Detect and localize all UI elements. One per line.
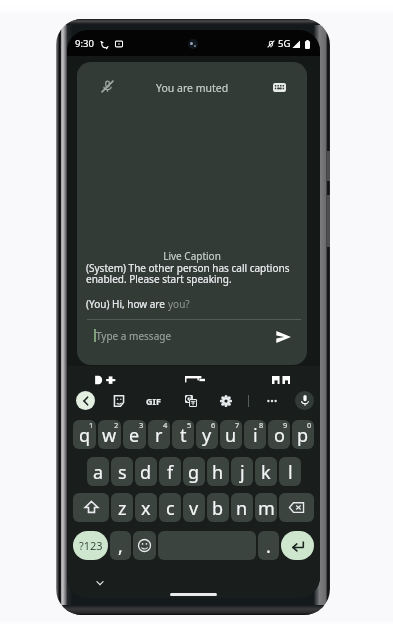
button[interactable]: y [196,420,218,449]
button[interactable]: h [207,457,229,486]
button[interactable]: l [279,457,301,486]
staticText: q [79,423,91,448]
staticText: GIF [146,395,161,407]
staticText: 5 [187,420,192,430]
staticText: (You) Hi, how are [86,297,168,311]
button[interactable]: o [268,420,290,449]
button[interactable]: p [292,420,314,449]
button[interactable]: Shift [73,493,109,522]
button[interactable]: r [148,420,170,449]
staticText: x [141,496,151,521]
button[interactable]: e [123,420,146,449]
staticText: 9 [283,420,288,430]
button[interactable]: a [87,457,109,486]
button[interactable]: v [183,493,205,522]
staticText: k [261,460,271,485]
staticText: 7 [235,420,240,430]
button[interactable]: Settings [216,391,235,410]
staticText: ?123 [79,538,103,553]
button[interactable]: b [207,493,229,522]
staticText: d [140,460,152,485]
staticText: u [225,423,237,448]
staticText: n [236,496,248,521]
button[interactable]: t [172,420,194,449]
staticText: 5G [278,37,291,50]
button[interactable]: Space [158,531,256,560]
staticText: w [102,423,117,448]
button[interactable]: Voice input [295,391,314,410]
button[interactable]: . [258,531,279,560]
staticText: a [93,460,104,485]
button[interactable]: c [159,493,181,522]
staticText: 0 [307,420,312,430]
button[interactable]: , [110,531,131,560]
button[interactable]: q [73,420,96,449]
staticText: 3 [139,420,144,430]
staticText: 2 [114,420,119,430]
staticText: l [288,460,293,485]
button[interactable]: Unmute [96,75,118,97]
staticText: b [212,496,224,521]
staticText: h [212,460,224,485]
staticText: . [266,534,271,559]
staticText: p [297,423,309,448]
button[interactable]: Translate [181,391,200,410]
button[interactable]: Backspace [279,493,314,522]
staticText: , [118,534,123,559]
button[interactable]: k [255,457,277,486]
staticText: you? [168,297,190,311]
staticText: g [188,460,200,485]
staticText: You are muted [156,81,229,95]
staticText: e [129,423,140,448]
button[interactable]: u [220,420,242,449]
button[interactable]: ?123 [73,531,108,560]
button[interactable]: w [98,420,121,449]
button[interactable]: z [111,493,133,522]
button[interactable]: f [159,457,181,486]
staticText: y [202,423,212,448]
button[interactable]: Send [272,326,294,348]
staticText: r [155,423,163,448]
staticText: c [166,496,175,521]
button[interactable]: Enter [281,531,314,560]
staticText: Type a message [96,329,172,343]
staticText: v [189,496,199,521]
button[interactable]: Back [76,391,95,410]
button[interactable]: GIF [144,391,163,410]
button[interactable]: j [231,457,253,486]
staticText: 6 [211,420,216,430]
button[interactable]: m [255,493,277,522]
staticText: 4 [163,420,168,430]
staticText: i [253,423,258,448]
staticText: 9:30 [75,37,94,50]
staticText: 8 [259,420,264,430]
staticText: enabled. Please start speaking. [86,272,232,286]
staticText: t [180,423,187,448]
button[interactable]: Keyboard [268,76,290,98]
staticText: f [167,460,174,485]
button[interactable]: d [135,457,157,486]
staticText: m [258,496,275,521]
button[interactable]: i [244,420,266,449]
button[interactable]: x [135,493,157,522]
button[interactable]: Emoji [133,531,156,560]
button[interactable]: Stickers [109,391,128,410]
staticText: s [118,460,127,485]
button[interactable]: More options [262,391,281,410]
staticText: o [274,423,285,448]
staticText: (System) The other person has call capti… [86,261,290,275]
button[interactable]: n [231,493,253,522]
button[interactable]: s [111,457,133,486]
staticText: j [240,460,245,485]
staticText: z [118,496,127,521]
button[interactable]: g [183,457,205,486]
staticText: 1 [89,420,94,430]
button[interactable]: Hide keyboard [92,575,108,591]
staticText: Live Caption [77,249,307,263]
